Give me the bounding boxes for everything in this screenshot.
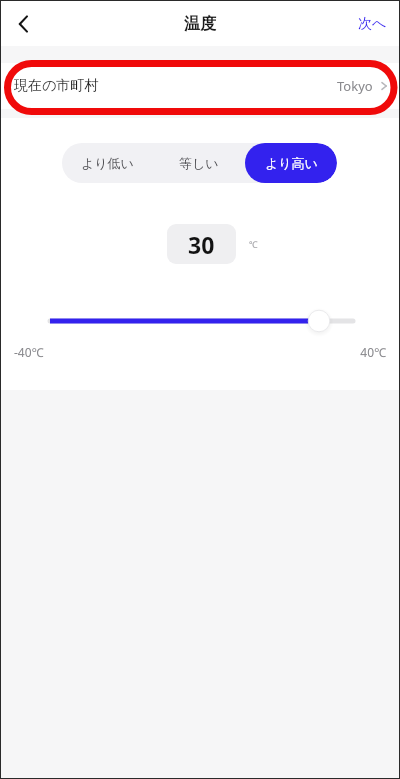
staticText: より高い	[265, 155, 318, 171]
staticText: Tokyo	[337, 77, 373, 95]
staticText: 40℃	[360, 344, 386, 360]
staticText: 等しい	[179, 155, 219, 171]
staticText: 30	[188, 229, 215, 260]
button[interactable]: Back	[1, 1, 49, 46]
button[interactable]: より高い	[245, 143, 337, 183]
staticText: 次へ	[358, 15, 387, 33]
button[interactable]: 現在の市町村	[1, 63, 399, 109]
staticText: ℃	[249, 238, 258, 250]
button[interactable]: 等しい	[153, 143, 245, 183]
staticText: -40℃	[14, 344, 44, 360]
staticText: 現在の市町村	[14, 77, 99, 95]
staticText: 温度	[184, 14, 216, 34]
button[interactable]: より低い	[62, 143, 153, 183]
button[interactable]: 30	[167, 224, 236, 264]
staticText: より低い	[81, 155, 134, 171]
button[interactable]: Temperature slider	[1, 304, 399, 344]
button[interactable]: 次へ	[346, 1, 399, 46]
